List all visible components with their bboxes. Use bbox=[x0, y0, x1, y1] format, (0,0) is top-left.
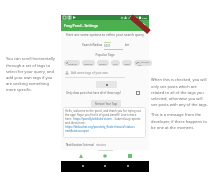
staticText: Search Radius bbox=[82, 43, 103, 47]
staticText: km bbox=[125, 43, 130, 47]
staticText: 1:24 bbox=[142, 16, 147, 19]
button[interactable]: general bbox=[82, 60, 95, 66]
staticText: https://bitbucket.org/pondcity_flutter/i… bbox=[65, 125, 136, 129]
staticText: Notification Interval bbox=[66, 143, 95, 147]
staticText: fitness bbox=[99, 62, 107, 65]
button[interactable]: Feed bbox=[76, 151, 86, 161]
staticText: 50.0 bbox=[104, 44, 110, 48]
staticText: Hello, welcome to the pond, and thank yo… bbox=[65, 109, 141, 113]
button[interactable]: minutes bbox=[96, 143, 112, 148]
staticText: news bbox=[124, 62, 130, 65]
button[interactable]: Home bbox=[141, 23, 146, 28]
staticText: https://pondly.bibliobird.com bbox=[73, 117, 112, 121]
staticText: fr_comments bbox=[138, 60, 150, 66]
button[interactable]: Add tag bbox=[96, 81, 117, 88]
button[interactable]: Remove Your Tags bbox=[91, 100, 121, 107]
staticText: This is a message from the developer, if… bbox=[151, 112, 207, 130]
staticText: Here are some options to refine your sea… bbox=[61, 32, 149, 36]
button[interactable]: info bbox=[111, 60, 120, 66]
staticText: and ideas here: bbox=[65, 121, 86, 125]
staticText: the app! Hope you find it of good benefi… bbox=[65, 113, 137, 117]
staticText: Popular Tags bbox=[61, 53, 149, 57]
button[interactable]: outdoor bbox=[64, 60, 80, 66]
staticText: minutes bbox=[96, 143, 106, 147]
staticText: Remove Your Tags bbox=[95, 102, 118, 106]
staticText: 100% bbox=[132, 16, 138, 19]
staticText: Radius bbox=[104, 41, 111, 44]
button[interactable]: Settings bbox=[125, 151, 135, 161]
staticText: here: bbox=[65, 117, 73, 121]
staticText: info bbox=[113, 62, 118, 65]
button[interactable]: Map bbox=[100, 151, 110, 161]
staticText: You can scroll horizontally through a se… bbox=[6, 56, 55, 92]
button[interactable]: fitness bbox=[97, 60, 109, 66]
staticText: new&status=open bbox=[65, 129, 90, 133]
staticText: Add some tags of your own bbox=[71, 71, 109, 75]
button[interactable]: news bbox=[122, 60, 132, 66]
button[interactable]: fr_comments bbox=[134, 60, 152, 66]
button[interactable]: Match all tags bbox=[136, 91, 140, 95]
staticText: general bbox=[84, 62, 93, 65]
staticText: outdoor bbox=[68, 62, 78, 65]
staticText: - Submit bug reports bbox=[112, 117, 141, 121]
staticText: When this is checked, you will only see … bbox=[151, 77, 209, 107]
staticText: Frog Pond - Settings bbox=[64, 23, 99, 28]
staticText: Only show posts that have all of these t… bbox=[66, 91, 122, 95]
